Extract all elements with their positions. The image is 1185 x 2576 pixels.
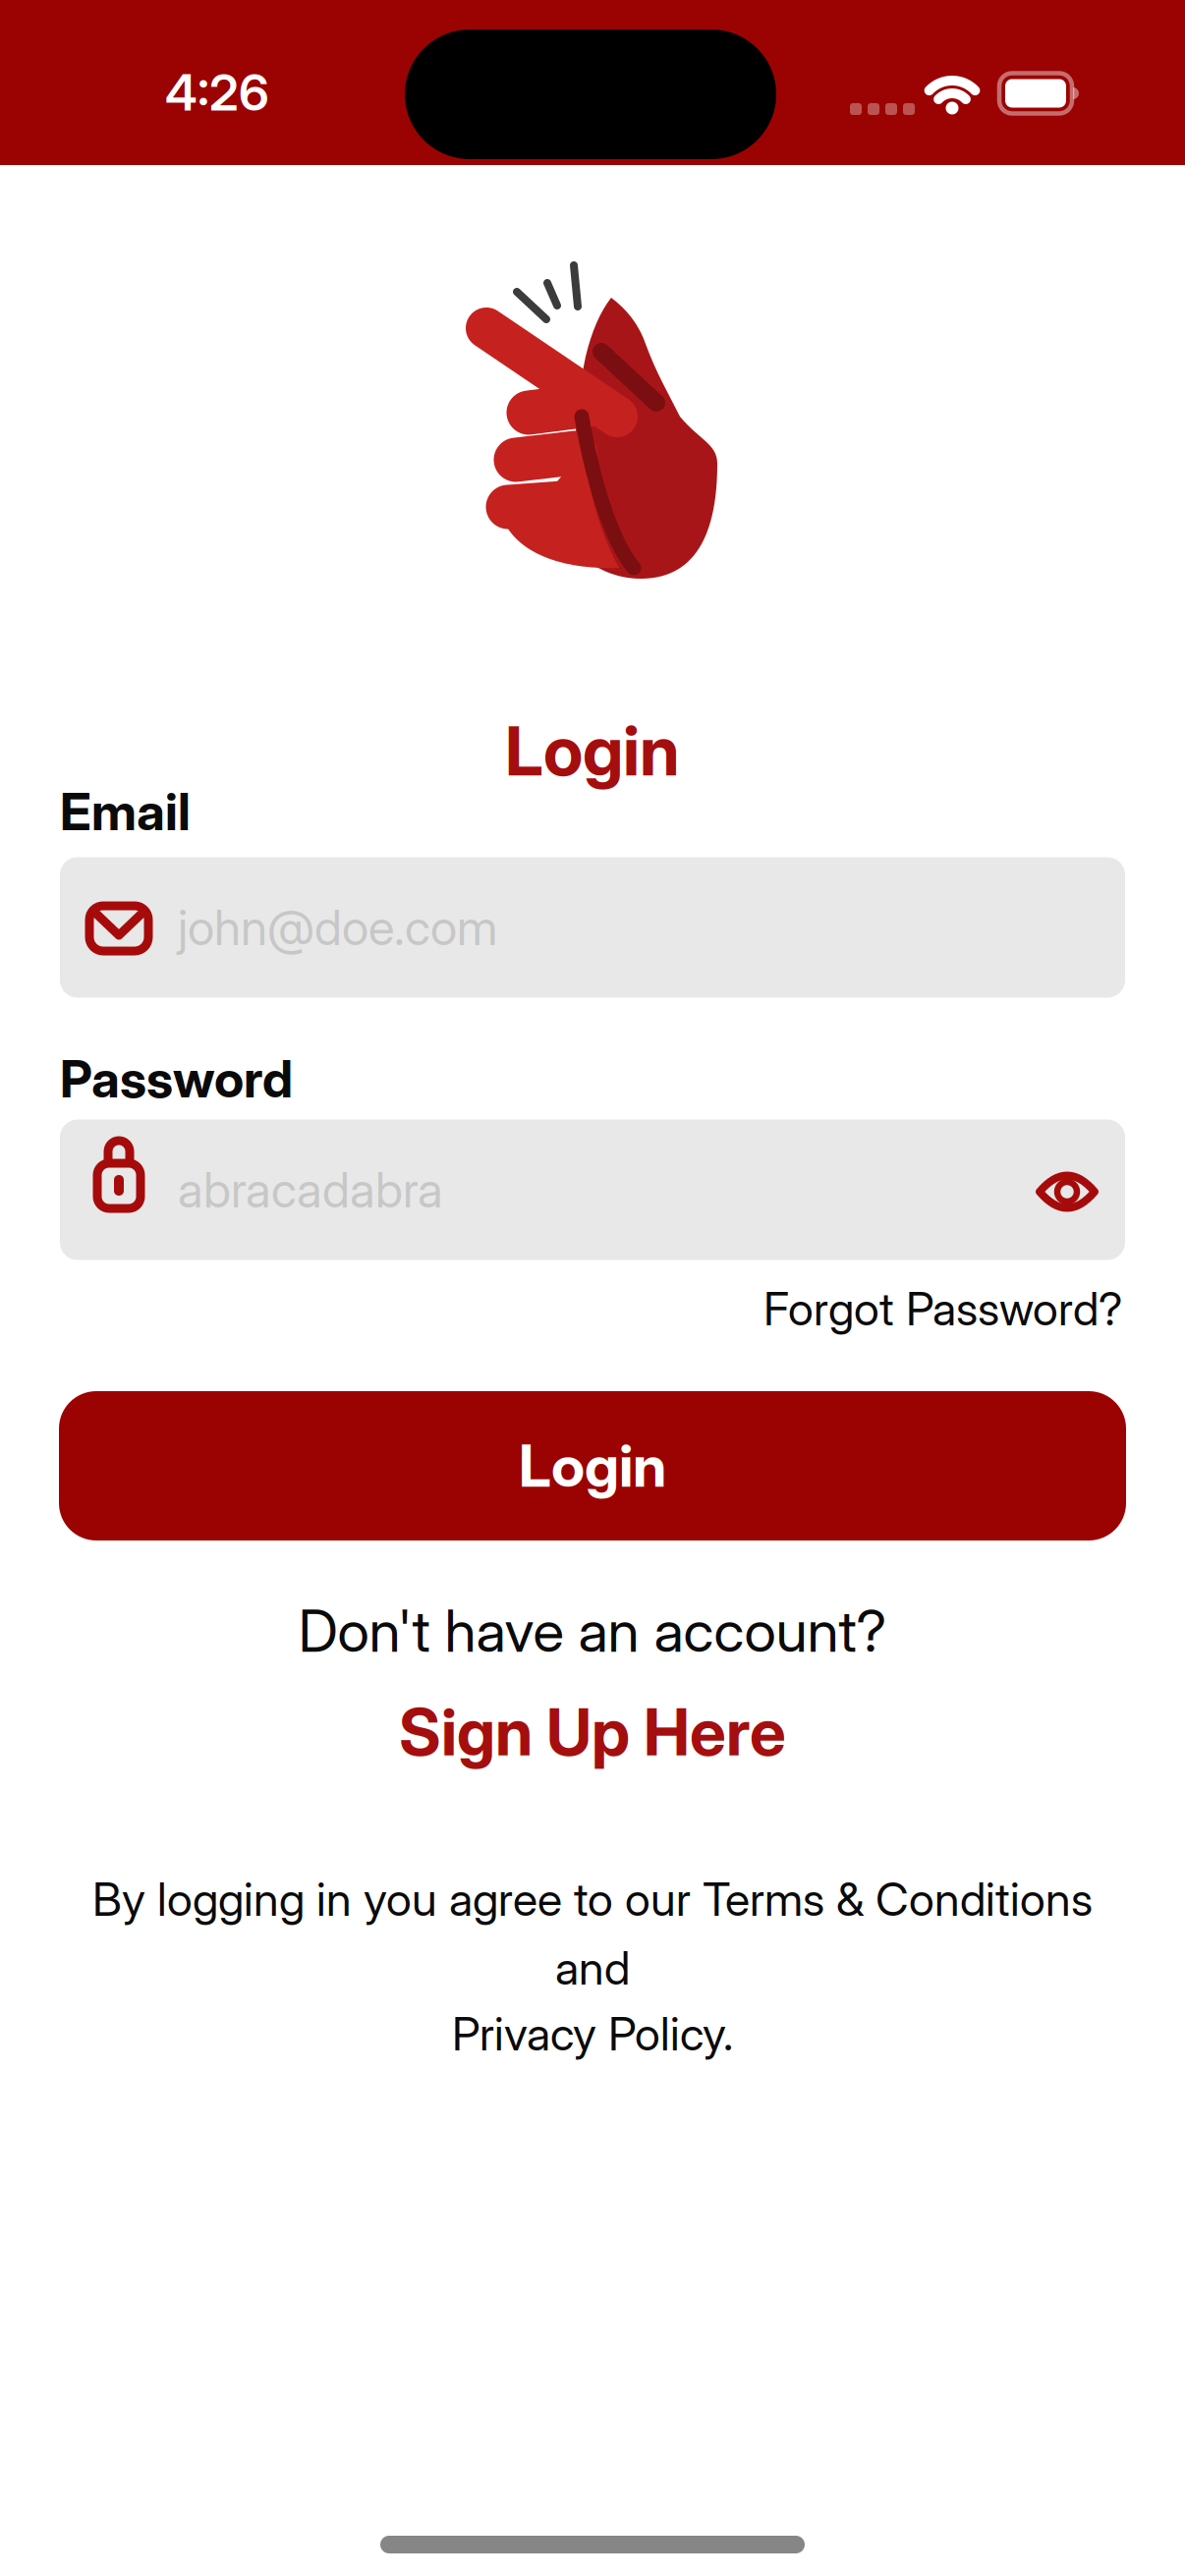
button[interactable]: Show password	[1023, 1148, 1111, 1236]
staticText: Email	[60, 781, 191, 842]
staticText: Privacy Policy.	[452, 2007, 733, 2061]
staticText: and	[555, 1941, 630, 1995]
staticText: Login	[505, 710, 680, 791]
staticText: abracadabra	[178, 1161, 443, 1218]
button[interactable]: Sign Up Here	[399, 1694, 786, 1770]
button[interactable]: Forgot Password?	[763, 1282, 1122, 1336]
staticText: Login	[519, 1432, 666, 1500]
staticText: Sign Up Here	[399, 1694, 786, 1770]
staticText: john@doe.com	[178, 899, 497, 956]
button[interactable]: Login	[59, 1391, 1126, 1540]
staticText: 4:26	[165, 63, 269, 122]
staticText: Don't have an account?	[298, 1597, 887, 1665]
staticText: Forgot Password?	[763, 1282, 1122, 1336]
staticText: Password	[60, 1049, 293, 1109]
staticText: By logging in you agree to our Terms & C…	[92, 1872, 1093, 1926]
